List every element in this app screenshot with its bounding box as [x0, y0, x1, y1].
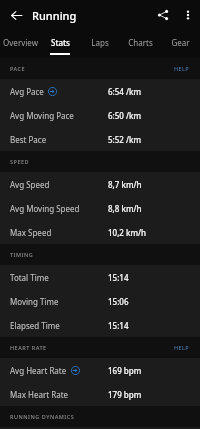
staticText: Avg Heart Rate	[10, 365, 67, 376]
button[interactable]: Gear	[160, 30, 200, 58]
staticText: RUNNING DYNAMICS	[10, 413, 75, 420]
staticText: Best Pace	[10, 134, 47, 145]
button[interactable]: More options	[176, 0, 200, 30]
staticText: Max Speed	[10, 227, 52, 238]
button[interactable]: Elapsed Time	[0, 313, 200, 337]
staticText: HEART RATE	[10, 344, 47, 351]
button[interactable]: Max Heart Rate	[0, 382, 200, 406]
staticText: Running	[32, 8, 77, 23]
staticText: 8,8 km/h	[108, 203, 142, 214]
staticText: 169 bpm	[108, 365, 142, 376]
staticText: 6:50 /km	[108, 110, 142, 121]
staticText: Elapsed Time	[10, 320, 60, 331]
button[interactable]: More info	[71, 366, 80, 375]
staticText: Moving Time	[10, 296, 59, 307]
button[interactable]: Avg Moving Pace	[0, 103, 200, 127]
staticText: 5:52 /km	[108, 134, 142, 145]
button[interactable]: Laps	[80, 30, 120, 58]
staticText: HELP	[174, 344, 190, 351]
button[interactable]: Share	[150, 0, 176, 30]
staticText: HELP	[174, 65, 190, 72]
button[interactable]: Total Time	[0, 265, 200, 289]
button[interactable]: Avg Heart Rate	[0, 358, 200, 382]
staticText: Gear	[171, 37, 190, 48]
staticText: 179 bpm	[108, 389, 142, 400]
staticText: TIMING	[10, 251, 34, 258]
button[interactable]: Best Pace	[0, 127, 200, 151]
staticText: Max Heart Rate	[10, 389, 69, 400]
staticText: PACE	[10, 65, 26, 72]
staticText: Stats	[51, 37, 70, 48]
staticText: 6:54 /km	[108, 86, 142, 97]
staticText: 8,7 km/h	[108, 179, 142, 190]
staticText: 15:14	[108, 320, 129, 331]
staticText: Avg Speed	[10, 179, 50, 190]
button[interactable]: Avg Pace	[0, 79, 200, 103]
button[interactable]: Back	[0, 0, 32, 30]
staticText: Total Time	[10, 272, 49, 283]
button[interactable]: Avg Speed	[0, 172, 200, 196]
staticText: Charts	[128, 37, 153, 48]
button[interactable]: More info	[48, 87, 57, 96]
staticText: SPEED	[10, 158, 30, 165]
button[interactable]: Avg Moving Speed	[0, 196, 200, 220]
button[interactable]: Stats	[40, 30, 80, 58]
button[interactable]: HELP	[174, 65, 190, 72]
staticText: 15:14	[108, 272, 129, 283]
button[interactable]: Overview	[0, 30, 40, 58]
button[interactable]: Charts	[120, 30, 160, 58]
button[interactable]: HELP	[174, 344, 190, 351]
button[interactable]: Moving Time	[0, 289, 200, 313]
staticText: Avg Moving Pace	[10, 110, 74, 121]
button[interactable]: Max Speed	[0, 220, 200, 244]
staticText: Avg Pace	[10, 86, 44, 97]
staticText: 10,2 km/h	[108, 227, 147, 238]
staticText: Laps	[91, 37, 109, 48]
staticText: 15:06	[108, 296, 129, 307]
staticText: Avg Moving Speed	[10, 203, 80, 214]
staticText: Overview	[3, 37, 38, 48]
